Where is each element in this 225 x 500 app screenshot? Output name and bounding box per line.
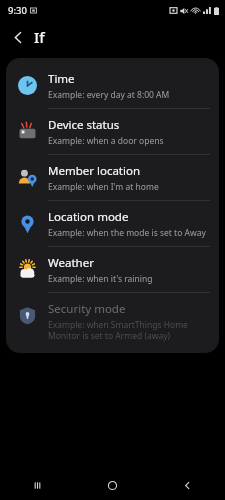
button[interactable]: Device status [6,109,219,155]
staticText: Example: every day at 8:00 AM [48,89,170,101]
button[interactable]: Security mode [6,293,219,348]
button[interactable]: Location mode [6,201,219,247]
button[interactable]: Recent apps [0,470,75,500]
button[interactable]: Back [150,470,225,500]
staticText: Device status [48,117,120,133]
button[interactable]: Weather [6,247,219,293]
staticText: Member location [48,163,141,179]
button[interactable]: Navigate up [5,24,31,50]
button[interactable]: Home [75,470,150,500]
staticText: 9:30 [8,4,27,17]
button[interactable]: Time [6,63,219,109]
staticText: If [34,27,45,47]
staticText: Location mode [48,209,129,225]
staticText: Example: when it's raining [48,273,153,285]
button[interactable]: Member location [6,155,219,201]
staticText: Security mode [48,301,126,317]
staticText: Example: when the mode is set to Away [48,227,206,239]
staticText: Example: when a door opens [48,135,164,147]
staticText: Example: when SmartThings Home Monitor i… [48,319,210,341]
staticText: Example: when I'm at home [48,181,159,193]
staticText: Weather [48,255,94,271]
staticText: Time [48,71,75,87]
